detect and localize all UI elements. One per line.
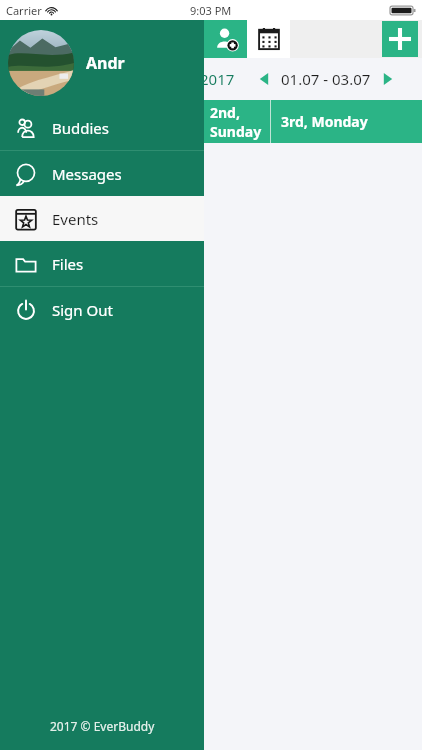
button[interactable]: Close menu xyxy=(0,20,204,58)
staticText: Sign Out xyxy=(52,300,113,320)
button[interactable]: 2nd, Sunday xyxy=(0,100,270,143)
staticText: 2nd, Sunday xyxy=(210,103,270,141)
staticText: 01.07 - 03.07 xyxy=(281,69,371,89)
staticText: Buddies xyxy=(52,118,109,138)
staticText: Events xyxy=(52,209,99,229)
staticText: Files xyxy=(52,254,84,274)
button[interactable]: Buddies xyxy=(0,105,204,150)
staticText: Carrier xyxy=(6,3,42,18)
button[interactable]: Messages xyxy=(0,151,204,196)
button[interactable]: Add xyxy=(382,21,418,57)
button[interactable]: Previous week xyxy=(253,68,275,90)
button[interactable]: Events xyxy=(0,196,204,241)
staticText: 2017 xyxy=(200,69,235,89)
button[interactable]: 3rd, Monday xyxy=(271,100,422,143)
button[interactable]: Add buddy xyxy=(204,20,247,58)
button[interactable]: Sign Out xyxy=(0,287,204,332)
staticText: 9:03 PM xyxy=(190,3,232,18)
button[interactable]: Calendar xyxy=(247,20,290,58)
staticText: 2017 © EverBuddy xyxy=(50,718,155,734)
staticText: 3rd, Monday xyxy=(281,112,368,131)
button[interactable]: Next week xyxy=(377,68,399,90)
staticText: Messages xyxy=(52,164,122,184)
button[interactable]: Files xyxy=(0,241,204,286)
staticText: Andr xyxy=(86,52,125,74)
